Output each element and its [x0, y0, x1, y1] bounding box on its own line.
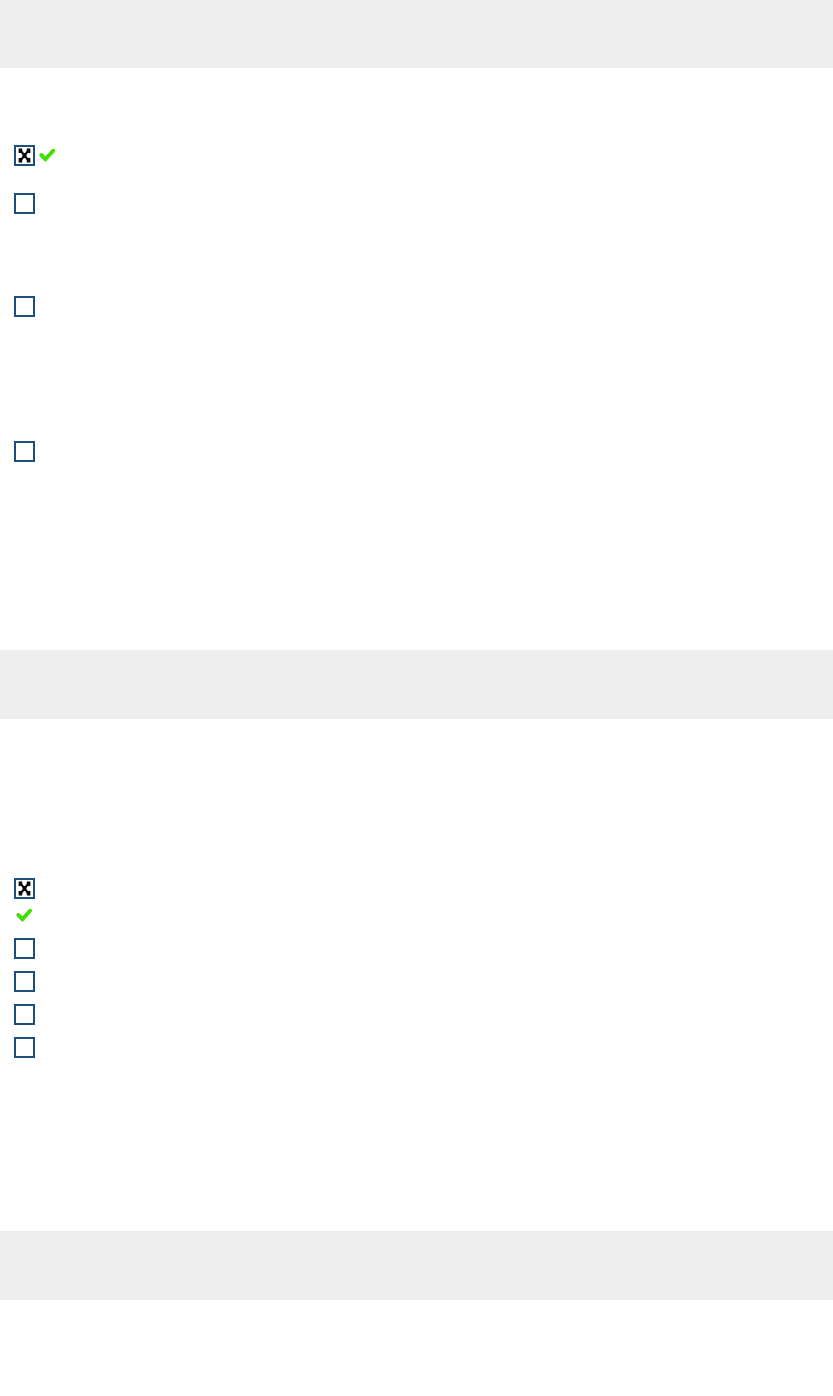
button[interactable]: Missing image placeholder [15, 972, 34, 991]
button[interactable]: Missing image placeholder [15, 297, 34, 316]
button[interactable]: Missing image placeholder [15, 194, 34, 213]
button[interactable]: Check mark [39, 148, 55, 162]
button[interactable]: Broken image placeholder [15, 146, 34, 165]
button[interactable]: Missing image placeholder [15, 1038, 34, 1057]
button[interactable]: Missing image placeholder [15, 442, 34, 461]
button[interactable]: Missing image placeholder [15, 1005, 34, 1024]
button[interactable]: Missing image placeholder [15, 939, 34, 958]
button[interactable]: Check mark [16, 908, 32, 922]
button[interactable]: Broken image placeholder [15, 879, 34, 898]
